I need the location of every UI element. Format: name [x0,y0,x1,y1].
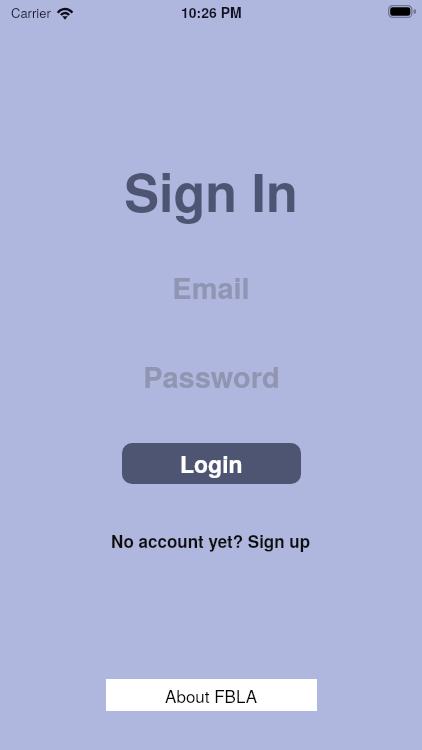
staticText: Carrier [11,3,51,22]
other: Battery full [388,5,416,18]
button[interactable]: Email [61,262,361,306]
staticText: 10:26 PM [181,2,242,22]
button[interactable]: Login [122,443,301,484]
staticText: Sign In [0,153,422,227]
button[interactable]: No account yet? Sign up [106,528,316,554]
staticText: About FBLA [165,683,258,707]
button[interactable]: Password [61,351,361,395]
staticText: Login [180,447,243,480]
other: Wi-Fi signal [56,7,74,18]
staticText: No account yet? Sign up [111,529,311,553]
button[interactable]: About FBLA [106,679,317,711]
staticText: Password [143,355,280,397]
staticText: Email [172,266,250,308]
